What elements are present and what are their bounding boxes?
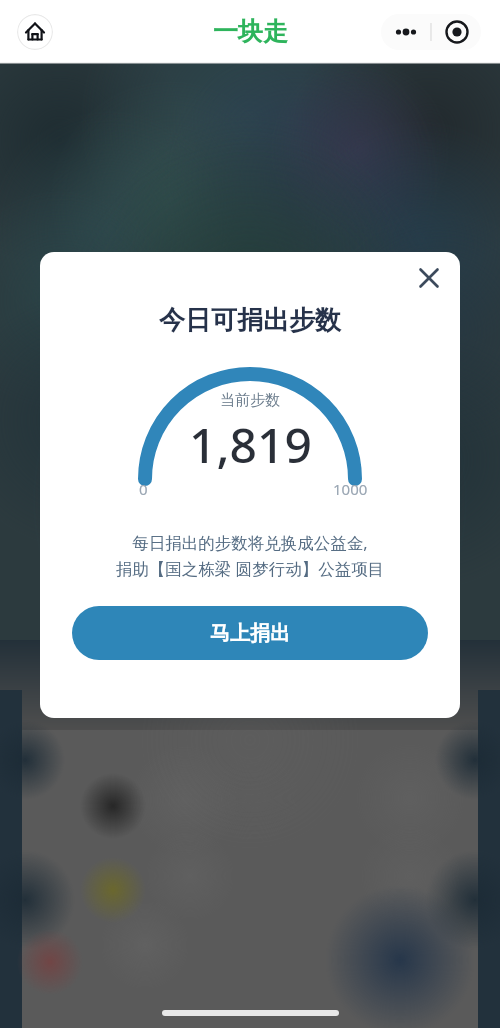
staticText: 每日捐出的步数将兑换成公益金, 捐助【国之栋梁 圆梦行动】公益项目	[56, 531, 444, 580]
button[interactable]: Close mini program	[432, 14, 481, 50]
button[interactable]: Home	[17, 14, 53, 50]
staticText: 当前步数	[220, 391, 280, 410]
staticText: 0	[139, 479, 148, 499]
staticText: 今日可捐出步数	[159, 304, 341, 337]
staticText: 1000	[333, 479, 368, 499]
staticText: 1,819	[189, 412, 312, 477]
button[interactable]: More	[381, 14, 431, 50]
staticText: 马上捐出	[210, 621, 290, 646]
staticText: 一块走	[213, 16, 288, 47]
button[interactable]: 马上捐出	[72, 606, 428, 660]
button[interactable]: Close	[407, 256, 451, 300]
